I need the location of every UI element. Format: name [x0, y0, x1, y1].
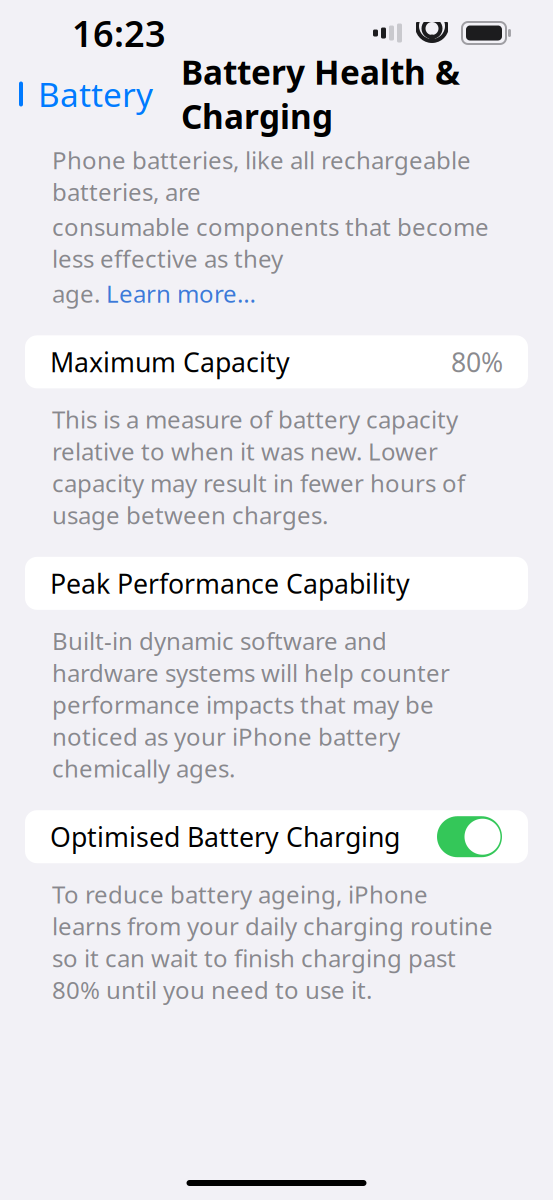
staticText: Learn more…: [106, 277, 256, 309]
staticText: Optimised Battery Charging: [50, 819, 400, 854]
staticText: Battery: [38, 72, 153, 116]
staticText: Built-in dynamic software and hardware s…: [52, 625, 450, 784]
button[interactable]: Optimised Battery Charging: [25, 810, 528, 863]
staticText: age.: [52, 277, 106, 309]
staticText: This is a measure of battery capacity re…: [52, 403, 465, 531]
staticText: To reduce battery ageing, iPhone learns …: [52, 878, 493, 1006]
staticText: Peak Performance Capability: [50, 566, 410, 601]
staticText: Battery Health & Charging: [181, 50, 460, 138]
staticText: Maximum Capacity: [50, 344, 290, 380]
staticText: 80%: [451, 344, 503, 380]
button[interactable]: Learn more…: [106, 277, 256, 309]
staticText: 16:23: [72, 9, 166, 57]
staticText: consumable components that become less e…: [52, 211, 489, 274]
button[interactable]: Battery: [0, 66, 153, 122]
staticText: Phone batteries, like all rechargeable b…: [52, 144, 471, 208]
button[interactable]: Peak Performance Capability: [25, 557, 528, 610]
button[interactable]: Maximum Capacity: [25, 335, 528, 388]
